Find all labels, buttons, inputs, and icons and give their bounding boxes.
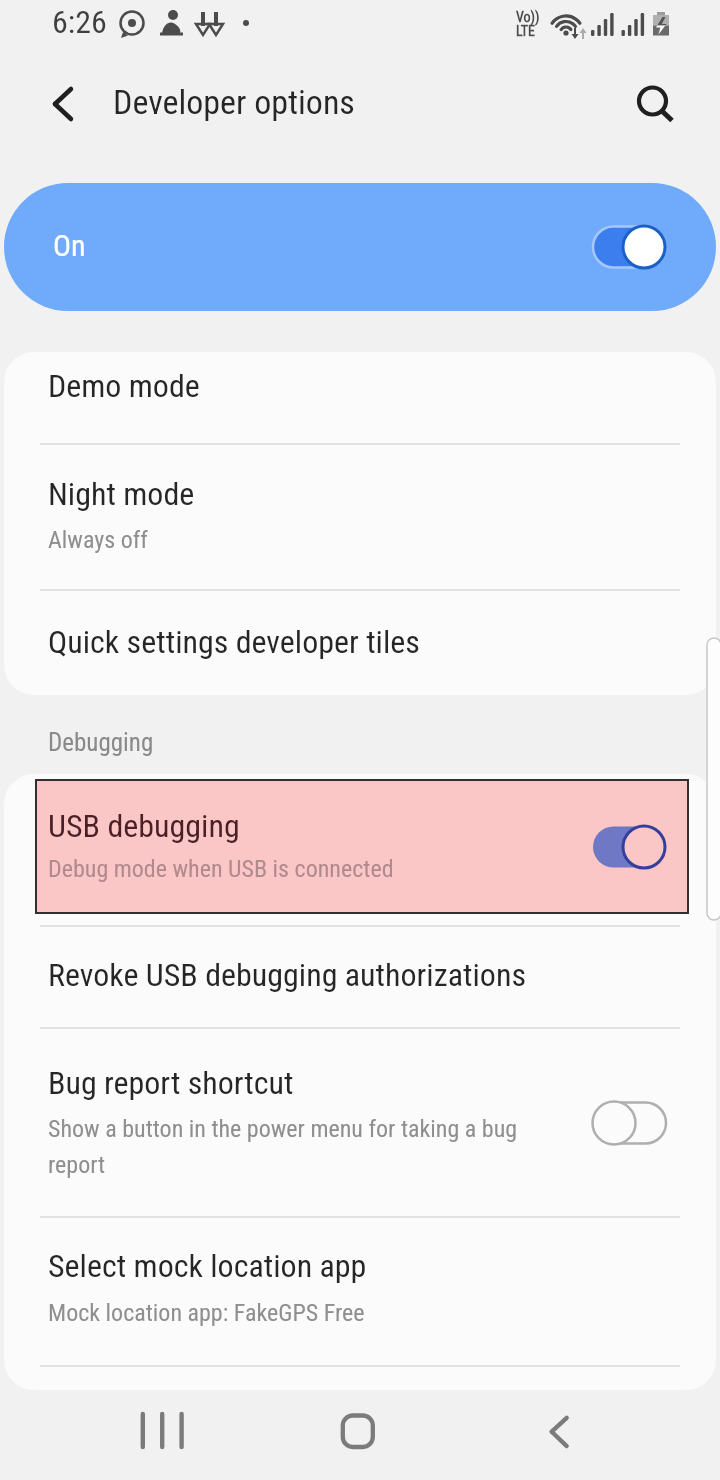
button[interactable]: [36, 780, 688, 913]
staticText: USB debugging: [48, 807, 240, 845]
staticText: Always off: [48, 526, 148, 554]
staticText: Mock location app: FakeGPS Free: [48, 1299, 365, 1327]
staticText: Show a button in the power menu for taki…: [48, 1115, 518, 1143]
button[interactable]: [592, 1100, 668, 1146]
button[interactable]: [4, 1028, 716, 1216]
button[interactable]: On: [4, 183, 716, 311]
staticText: Vo)): [516, 9, 540, 25]
staticText: LTE: [516, 23, 536, 39]
staticText: Night mode: [48, 475, 195, 513]
button[interactable]: [622, 70, 688, 136]
staticText: 6:26: [52, 3, 107, 41]
button[interactable]: [107, 1395, 207, 1475]
staticText: Bug report shortcut: [48, 1064, 294, 1102]
button[interactable]: [307, 1395, 407, 1475]
button[interactable]: [4, 1216, 716, 1390]
button[interactable]: [4, 352, 716, 443]
button[interactable]: [4, 926, 716, 1028]
staticText: Quick settings developer tiles: [48, 623, 420, 661]
staticText: Developer options: [113, 82, 355, 122]
staticText: Debugging: [48, 728, 154, 757]
staticText: Select mock location app: [48, 1247, 367, 1285]
staticText: report: [48, 1151, 106, 1179]
staticText: Revoke USB debugging authorizations: [48, 956, 526, 994]
staticText: On: [53, 228, 86, 263]
staticText: Demo mode: [48, 367, 200, 405]
button[interactable]: [593, 824, 669, 870]
button[interactable]: [30, 70, 96, 136]
button[interactable]: [593, 224, 669, 270]
button[interactable]: [4, 443, 716, 590]
button[interactable]: [4, 590, 716, 695]
staticText: Debug mode when USB is connected: [48, 855, 394, 883]
button[interactable]: [508, 1395, 608, 1475]
